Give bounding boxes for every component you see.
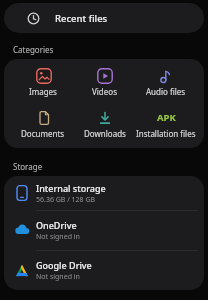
button[interactable]: Downloads — [74, 109, 135, 139]
staticText: OneDrive — [36, 219, 77, 231]
button[interactable]: Google Drive — [4, 251, 204, 290]
button[interactable]: Documents — [12, 109, 74, 139]
staticText: Installation files — [136, 128, 196, 139]
staticText: Audio files — [146, 86, 186, 97]
staticText: Documents — [21, 128, 65, 139]
button[interactable]: Images — [12, 67, 74, 97]
staticText: Not signed in — [36, 272, 80, 282]
staticText: Categories — [13, 44, 54, 55]
staticText: Recent files — [55, 12, 108, 25]
staticText: Videos — [92, 86, 117, 97]
button[interactable]: Audio files — [135, 67, 196, 97]
button[interactable]: Recent files — [4, 3, 204, 33]
button[interactable]: OneDrive — [4, 211, 204, 250]
button[interactable]: APK — [135, 109, 196, 139]
button[interactable]: Videos — [74, 67, 135, 97]
staticText: Storage — [13, 161, 43, 172]
button[interactable]: Internal storage — [4, 176, 204, 210]
staticText: Not signed in — [36, 232, 80, 242]
staticText: Downloads — [84, 128, 126, 139]
staticText: Images — [29, 86, 57, 97]
staticText: 56.36 GB / 128 GB — [36, 195, 96, 205]
staticText: Internal storage — [36, 182, 106, 194]
staticText: Google Drive — [36, 259, 92, 271]
staticText: APK — [157, 111, 176, 124]
